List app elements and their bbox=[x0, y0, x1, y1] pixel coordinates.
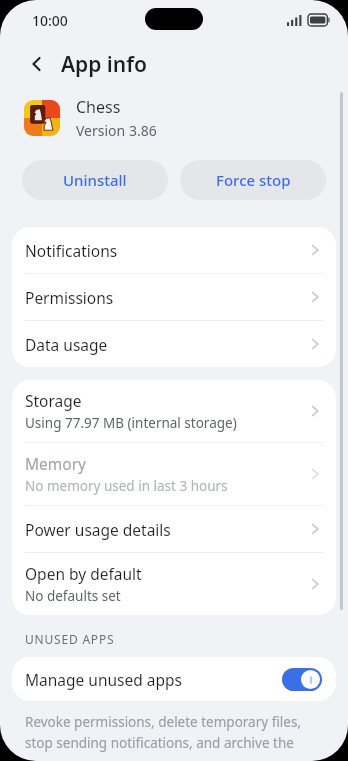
staticText: Uninstall bbox=[63, 170, 127, 190]
staticText: Permissions bbox=[25, 287, 307, 308]
staticText: Storage bbox=[25, 390, 82, 411]
staticText: No defaults set bbox=[25, 587, 121, 605]
staticText: Force stop bbox=[216, 170, 291, 190]
button[interactable]: Force stop bbox=[180, 160, 326, 200]
staticText: Version 3.86 bbox=[76, 121, 157, 140]
staticText: Data usage bbox=[25, 334, 307, 355]
button[interactable]: Notifications bbox=[12, 227, 336, 273]
staticText: 10:00 bbox=[32, 11, 68, 30]
staticText: Open by default bbox=[25, 563, 142, 584]
staticText: No memory used in last 3 hours bbox=[25, 477, 228, 495]
staticText: Using 77.97 MB (internal storage) bbox=[25, 414, 237, 432]
staticText: UNUSED APPS bbox=[25, 631, 115, 647]
button[interactable]: Open by default bbox=[12, 553, 336, 615]
button[interactable]: Uninstall bbox=[22, 160, 168, 200]
button[interactable]: Back bbox=[22, 49, 52, 79]
button[interactable]: Data usage bbox=[12, 321, 336, 367]
button[interactable]: Manage unused apps bbox=[12, 657, 336, 701]
staticText: Manage unused apps bbox=[25, 669, 282, 690]
staticText: Notifications bbox=[25, 240, 307, 261]
staticText: Chess bbox=[76, 96, 121, 118]
staticText: Power usage details bbox=[25, 519, 307, 540]
button[interactable]: Storage bbox=[12, 380, 336, 442]
staticText: App info bbox=[61, 50, 147, 79]
button[interactable]: Memory bbox=[12, 443, 336, 505]
button[interactable]: Permissions bbox=[12, 274, 336, 320]
staticText: Revoke permissions, delete temporary fil… bbox=[25, 713, 301, 752]
staticText: Memory bbox=[25, 453, 86, 474]
button[interactable]: Power usage details bbox=[12, 506, 336, 552]
